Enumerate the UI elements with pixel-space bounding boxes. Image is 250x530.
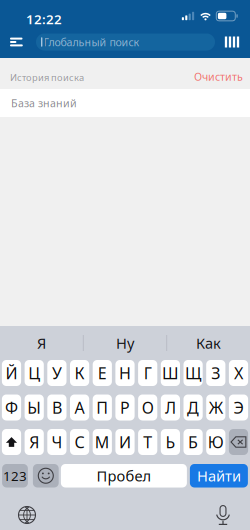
staticText: База знаний [11,96,77,110]
button[interactable]: Э [229,394,248,420]
staticText: С [75,431,85,453]
button[interactable]: Ш [161,360,180,386]
button[interactable]: Д [183,394,203,420]
button[interactable]: Ч [47,429,66,455]
button[interactable]: Ж [206,394,225,420]
staticText: Глобальный поиск [44,35,140,49]
staticText: 123 [3,467,27,485]
button[interactable]: И [115,429,135,455]
staticText: Н [119,362,131,384]
button[interactable]: Shift [2,429,21,455]
staticText: Ж [209,397,223,418]
staticText: У [52,362,62,384]
staticText: Х [234,362,243,384]
button[interactable]: Х [229,360,248,386]
staticText: Щ [185,362,201,384]
button[interactable]: С [70,429,89,455]
staticText: З [211,362,220,384]
button[interactable]: 123 [2,464,28,487]
staticText: Ю [208,431,224,453]
staticText: Ы [27,397,41,418]
button[interactable]: Ь [161,429,180,455]
staticText: Ч [51,431,62,453]
button[interactable]: Е [93,360,112,386]
staticText: М [95,431,110,453]
staticText: Б [188,431,198,453]
button[interactable]: Й [2,360,21,386]
button[interactable]: Я [0,326,83,360]
button[interactable]: Л [161,394,180,420]
button[interactable]: Очистить [194,69,250,84]
staticText: Я [29,431,39,453]
button[interactable]: М [93,429,112,455]
button[interactable]: Ну [84,326,166,360]
staticText: Д [187,397,199,418]
staticText: Е [98,362,107,384]
staticText: Ц [28,362,40,384]
button[interactable]: У [47,360,66,386]
button[interactable]: Пробел [61,464,187,487]
button[interactable]: База знаний [0,89,250,117]
button[interactable]: К [70,360,89,386]
staticText: Г [144,362,152,384]
staticText: И [119,431,131,453]
button[interactable]: О [138,394,157,420]
staticText: П [96,397,108,418]
staticText: О [142,397,154,418]
button[interactable]: Щ [183,360,203,386]
button[interactable]: Глобальный поиск [36,33,215,50]
button[interactable]: Т [138,429,157,455]
staticText: Т [143,431,152,453]
staticText: История поиска [10,71,84,84]
button[interactable]: Ц [25,360,44,386]
staticText: Ну [116,333,134,353]
staticText: Как [196,333,221,353]
staticText: В [52,397,62,418]
staticText: Найти [197,466,241,485]
staticText: Й [5,362,17,384]
button[interactable]: Delete [229,429,248,455]
button[interactable]: Н [115,360,135,386]
button[interactable]: Dictation [207,500,239,530]
button[interactable]: Р [115,394,135,420]
button[interactable]: Ф [2,394,21,420]
staticText: А [75,397,85,418]
button[interactable]: Change keyboard [11,500,43,530]
staticText: Л [165,397,176,418]
staticText: Э [233,397,243,418]
button[interactable]: Scan barcode [222,29,242,55]
button[interactable]: Ю [206,429,225,455]
button[interactable]: Как [167,326,250,360]
button[interactable]: Г [138,360,157,386]
staticText: Ф [5,397,18,418]
staticText: Ь [165,431,175,453]
staticText: К [75,362,85,384]
staticText: Очистить [194,69,243,84]
button[interactable]: Menu [0,29,36,55]
button[interactable]: Я [25,429,44,455]
staticText: Р [120,397,130,418]
staticText: Я [37,333,46,353]
button[interactable]: А [70,394,89,420]
button[interactable]: З [206,360,225,386]
button[interactable]: В [47,394,66,420]
staticText: 12:22 [26,10,62,28]
button[interactable]: Emoji [33,464,59,487]
button[interactable]: Найти [190,464,248,487]
button[interactable]: Б [183,429,203,455]
staticText: Ш [162,362,179,384]
button[interactable]: Ы [25,394,44,420]
staticText: Пробел [96,466,151,485]
button[interactable]: П [93,394,112,420]
